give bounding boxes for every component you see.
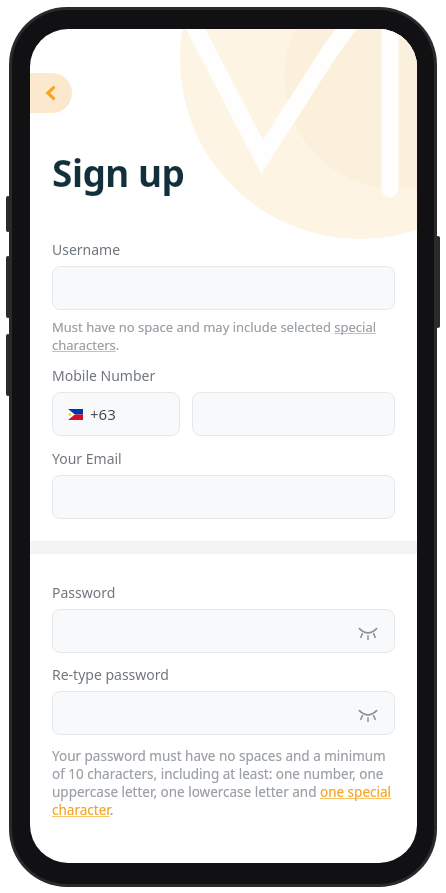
button[interactable]: Back <box>30 73 72 113</box>
staticText: Your password must have no spaces and a … <box>52 747 397 819</box>
button[interactable]: Show password <box>355 700 381 726</box>
staticText: Username <box>52 240 121 259</box>
staticText: Password <box>52 583 116 602</box>
button[interactable] <box>52 475 395 519</box>
staticText: Re-type password <box>52 665 169 684</box>
button[interactable]: Show password <box>355 618 381 644</box>
button[interactable]: Show password <box>52 691 395 735</box>
staticText: Sign up <box>52 147 185 197</box>
button[interactable]: +63 <box>52 392 180 436</box>
staticText: Mobile Number <box>52 366 156 385</box>
button[interactable] <box>192 392 395 436</box>
staticText: Your Email <box>52 449 122 468</box>
staticText: +63 <box>90 404 116 424</box>
button[interactable] <box>52 266 395 310</box>
button[interactable]: Show password <box>52 609 395 653</box>
staticText: Must have no space and may include selec… <box>52 318 382 354</box>
